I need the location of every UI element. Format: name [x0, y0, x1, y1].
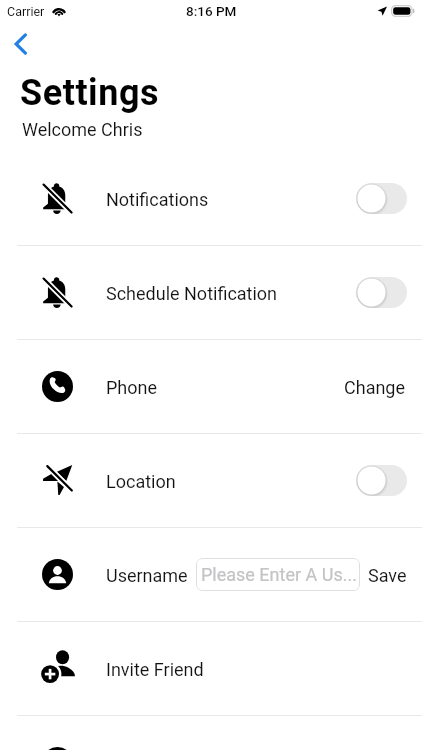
button[interactable]: Save [368, 556, 407, 593]
staticText: Settings [20, 72, 160, 114]
button[interactable]: Notifications [0, 152, 422, 245]
staticText: Notifications [106, 189, 209, 210]
staticText: Schedule Notification [106, 283, 278, 304]
staticText: Invite Friend [106, 659, 204, 680]
staticText: Phone [106, 377, 158, 398]
button[interactable]: Username input [196, 558, 360, 591]
button[interactable] [0, 716, 422, 750]
button[interactable]: Back [2, 25, 40, 63]
staticText: Carrier [7, 4, 45, 19]
staticText: Please Enter A Us... [201, 564, 357, 585]
button[interactable]: Invite Friend [0, 622, 422, 715]
staticText: Username [106, 565, 188, 586]
button[interactable]: Location [0, 434, 422, 527]
button[interactable]: Toggle [356, 465, 407, 496]
staticText: 8:16 PM [186, 3, 237, 19]
staticText: Change [344, 377, 406, 398]
staticText: Save [368, 565, 407, 586]
staticText: Location [106, 471, 176, 492]
button[interactable]: Phone [0, 340, 422, 433]
staticText: Welcome Chris [22, 119, 143, 140]
button[interactable]: Change [343, 368, 407, 405]
button[interactable]: Schedule Notification [0, 246, 422, 339]
button[interactable]: Toggle [356, 183, 407, 214]
button[interactable]: Toggle [356, 277, 407, 308]
